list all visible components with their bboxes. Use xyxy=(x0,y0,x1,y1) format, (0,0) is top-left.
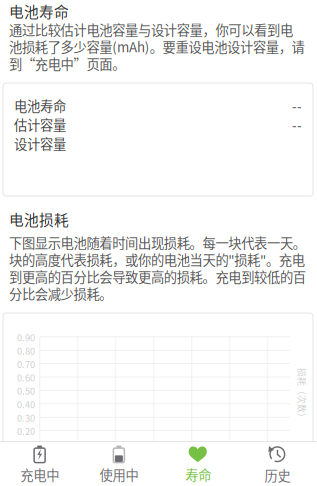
staticText: 历史 xyxy=(264,467,290,483)
button[interactable]: 充电中 xyxy=(0,445,79,482)
staticText: 使用中 xyxy=(99,466,138,482)
staticText: 0.30 xyxy=(17,412,35,423)
staticText: -- xyxy=(292,116,302,133)
staticText: 估计容量 xyxy=(14,116,66,133)
staticText: 电池寿命 xyxy=(9,2,69,20)
staticText: 0.40 xyxy=(17,399,35,410)
staticText: 充电中 xyxy=(20,466,59,482)
staticText: 电池损耗 xyxy=(9,210,69,228)
staticText: 0.70 xyxy=(17,359,35,369)
staticText: 0.90 xyxy=(17,332,35,343)
staticText: 0.60 xyxy=(17,372,35,383)
button[interactable]: 使用中 xyxy=(79,445,158,482)
staticText: 0.20 xyxy=(17,426,35,436)
button[interactable]: 寿命 xyxy=(158,445,238,482)
staticText: 寿命 xyxy=(185,466,211,482)
button[interactable]: 历史 xyxy=(238,445,317,483)
staticText: 0.50 xyxy=(17,385,35,396)
staticText: 设计容量 xyxy=(14,135,66,152)
staticText: 通过比较估计电池容量与设计容量，你可以看到电池损耗了多少容量(mAh)。要重设电… xyxy=(9,21,305,72)
staticText: 下图显示电池随着时间出现损耗。每一块代表一天。块的高度代表损耗，或你的电池当天的… xyxy=(9,234,306,302)
staticText: -- xyxy=(292,97,302,114)
staticText: 损耗（次数） xyxy=(275,390,317,400)
staticText: 0.80 xyxy=(17,345,35,356)
staticText: 电池寿命 xyxy=(14,97,66,114)
